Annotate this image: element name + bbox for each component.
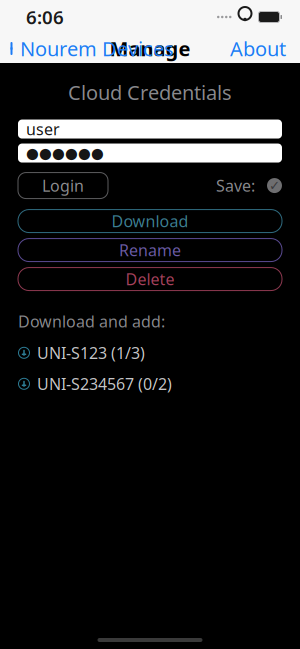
staticText: Save: (216, 175, 255, 196)
staticText: UNI-S234567 (0/2) (37, 373, 172, 394)
staticText: Rename (119, 239, 181, 261)
staticText: Download (111, 210, 188, 232)
button[interactable]: Delete (18, 268, 282, 291)
staticText: Cloud Credentials (68, 79, 232, 106)
staticText: Manage (109, 35, 190, 62)
staticText: ✓ (269, 178, 280, 193)
staticText: 6:06 (26, 5, 64, 29)
button[interactable]: Save: (216, 175, 282, 196)
button[interactable]: Login (18, 173, 108, 199)
staticText: ●●●●●● (26, 145, 104, 161)
staticText: Delete (125, 268, 174, 290)
staticText: Download and add: (18, 311, 165, 332)
staticText: UNI-S123 (1/3) (37, 342, 145, 363)
staticText: About (230, 35, 286, 62)
button[interactable]: UNI-S234567 (0/2) (18, 375, 282, 393)
button[interactable]: Rename (18, 239, 282, 262)
button[interactable]: Nourem Devices (0, 29, 174, 68)
button[interactable]: UNI-S123 (1/3) (18, 344, 282, 362)
staticText: user (26, 118, 60, 140)
button[interactable]: About (230, 29, 300, 68)
button[interactable]: Download (18, 210, 282, 233)
staticText: Nourem Devices (20, 35, 174, 62)
staticText: Login (42, 175, 84, 196)
